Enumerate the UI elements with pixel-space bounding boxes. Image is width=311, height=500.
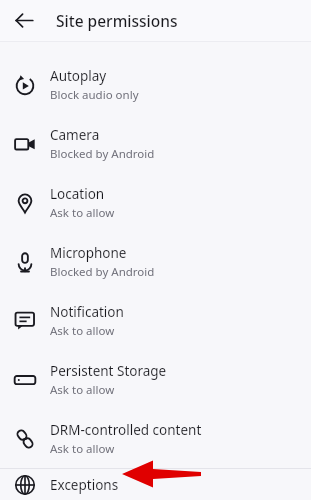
staticText: Blocked by Android xyxy=(50,146,155,162)
staticText: Blocked by Android xyxy=(50,264,155,280)
button[interactable]: Exceptions xyxy=(0,469,311,500)
staticText: Notification xyxy=(50,303,124,321)
staticText: Ask to allow xyxy=(50,382,115,398)
staticText: Microphone xyxy=(50,244,127,262)
button[interactable]: Microphone xyxy=(0,232,311,291)
staticText: Exceptions xyxy=(50,476,119,494)
staticText: Location xyxy=(50,185,105,203)
staticText: Autoplay xyxy=(50,67,107,85)
staticText: Site permissions xyxy=(56,10,178,31)
button[interactable]: DRM-controlled content xyxy=(0,409,311,468)
staticText: Ask to allow xyxy=(50,205,115,221)
staticText: Camera xyxy=(50,126,100,144)
button[interactable]: Location xyxy=(0,173,311,232)
button[interactable]: Autoplay xyxy=(0,42,311,114)
staticText: Persistent Storage xyxy=(50,362,167,380)
staticText: Ask to allow xyxy=(50,323,115,339)
button[interactable]: Back xyxy=(8,4,41,37)
button[interactable]: Notification xyxy=(0,291,311,350)
staticText: Ask to allow xyxy=(50,441,115,457)
staticText: DRM-controlled content xyxy=(50,421,202,439)
staticText: Block audio only xyxy=(50,87,139,103)
button[interactable]: Camera xyxy=(0,114,311,173)
button[interactable]: Persistent Storage xyxy=(0,350,311,409)
